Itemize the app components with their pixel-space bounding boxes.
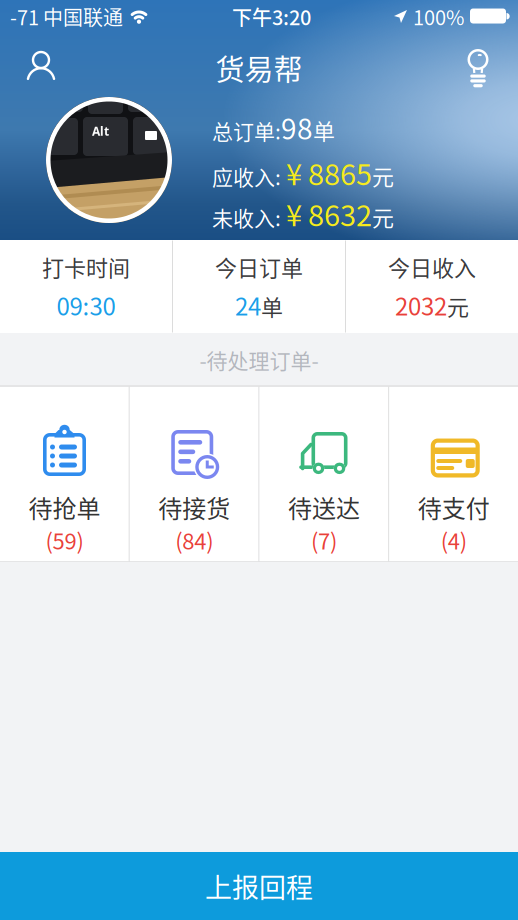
staticText: 元 [372,201,394,232]
button[interactable]: 待支付 [389,387,518,561]
staticText: 待抢单 [28,490,100,524]
staticText: 98 [281,107,313,147]
staticText: 2032 [395,288,447,322]
button[interactable]: 头像 [46,97,172,223]
button[interactable]: 待接货 [130,387,259,561]
staticText: 元 [447,290,469,322]
button[interactable]: 消息 [465,48,491,88]
button[interactable]: 待抢单 [0,387,129,561]
staticText: 应收入: [212,161,281,191]
staticText: 单 [313,114,335,146]
staticText: 100% [413,2,464,31]
button[interactable]: 上报回程 [0,852,518,920]
staticText: 24 [235,288,261,322]
staticText: 上报回程 [205,866,313,906]
staticText: ¥ 8865 [286,151,372,193]
staticText: (59) [45,524,83,556]
staticText: (7) [311,524,337,556]
staticText: 09:30 [56,288,115,322]
staticText: 元 [372,160,394,191]
staticText: 单 [261,290,283,322]
button[interactable]: 待送达 [259,387,388,561]
staticText: (4) [441,524,467,556]
staticText: -待处理订单- [199,344,318,375]
staticText: 待送达 [288,490,360,524]
staticText: (84) [175,524,213,556]
staticText: 今日订单 [215,251,303,283]
staticText: -71 中国联通 [10,2,123,31]
staticText: Alt [92,123,109,139]
button[interactable]: 个人中心 [24,51,58,85]
staticText: 总订单: [212,115,281,145]
staticText: 今日收入 [388,251,476,283]
staticText: 待接货 [158,490,230,524]
staticText: ¥ 8632 [286,192,372,234]
staticText: 待支付 [418,490,490,524]
staticText: 打卡时间 [42,251,130,283]
staticText: 未收入: [212,202,281,232]
staticText: 下午3:20 [232,2,311,31]
staticText: 货易帮 [215,47,302,89]
